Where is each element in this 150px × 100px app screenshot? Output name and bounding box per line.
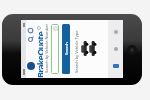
staticText: BrakeQuote bbox=[34, 31, 43, 78]
button[interactable]: Cart bbox=[27, 27, 34, 34]
button[interactable]: Home bbox=[108, 60, 123, 72]
button[interactable]: Home bbox=[127, 45, 137, 55]
button[interactable]: Vehicle bbox=[81, 41, 88, 56]
button[interactable]: Vehicle bbox=[89, 41, 96, 56]
staticText: Search by Vehicle Type bbox=[74, 30, 79, 73]
button[interactable]: Search bbox=[27, 36, 34, 43]
button[interactable]: Orders bbox=[108, 43, 123, 55]
button[interactable]: Account bbox=[108, 26, 123, 38]
staticText: Search by Vehicle Number bbox=[44, 23, 49, 73]
button[interactable]: Menu bbox=[27, 62, 35, 70]
button[interactable]: Search bbox=[62, 24, 70, 74]
button[interactable] bbox=[51, 24, 59, 74]
staticText: Search bbox=[64, 42, 69, 55]
